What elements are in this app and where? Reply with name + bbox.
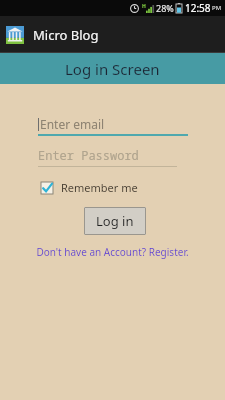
button[interactable]: Enter Password (38, 147, 177, 167)
staticText: 28% (156, 2, 174, 14)
staticText: 12:58 (185, 1, 211, 15)
other: Micro Blog app icon (6, 26, 24, 44)
button[interactable]: Don't have an Account? Register. (36, 245, 189, 259)
staticText: Log in Screen (65, 59, 160, 79)
button[interactable]: Remember me (41, 180, 138, 195)
button[interactable]: Enter email (38, 116, 188, 136)
staticText: PM (212, 4, 222, 12)
staticText: Micro Blog (33, 26, 99, 44)
staticText: H (142, 3, 146, 10)
staticText: Enter Password (38, 147, 139, 163)
button[interactable]: Log in (84, 207, 146, 235)
staticText: Log in (96, 212, 134, 230)
staticText: Remember me (61, 180, 138, 195)
staticText: Enter email (40, 116, 105, 132)
